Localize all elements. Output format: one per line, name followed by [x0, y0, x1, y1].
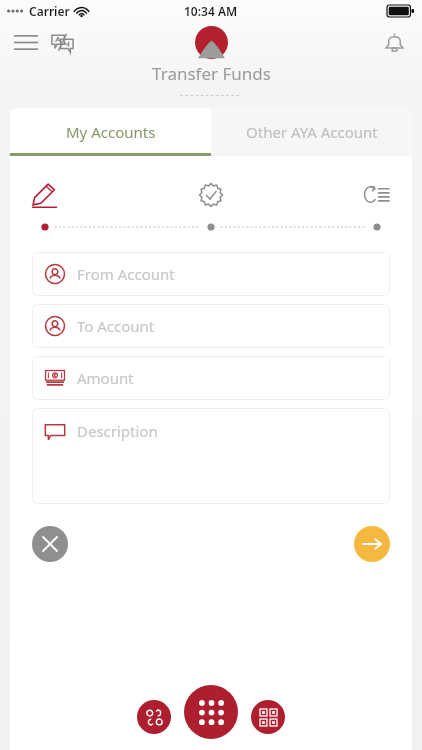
button[interactable]: To Account [32, 304, 390, 348]
staticText: My Accounts [66, 122, 156, 142]
button[interactable]: Amount [32, 356, 390, 400]
staticText: Other AYA Account [246, 122, 378, 142]
button[interactable]: Other AYA Account [211, 108, 412, 156]
button[interactable]: From Account [32, 252, 390, 296]
staticText: To Account [77, 316, 155, 336]
staticText: Carrier [29, 3, 70, 19]
staticText: Amount [77, 368, 134, 388]
button[interactable]: Change language [45, 25, 79, 59]
staticText: Transfer Funds [152, 62, 271, 85]
button[interactable]: Services [137, 700, 171, 734]
button[interactable]: Next [354, 526, 390, 562]
button[interactable]: Description [32, 408, 390, 504]
button[interactable]: Cancel [32, 526, 68, 562]
staticText: 10:34 AM [184, 3, 238, 19]
button[interactable]: Scan QR code [251, 700, 285, 734]
button[interactable]: My Accounts [10, 108, 211, 156]
staticText: Description [77, 421, 158, 441]
button[interactable]: All apps [184, 685, 238, 739]
button[interactable]: Notifications [377, 25, 411, 59]
staticText: From Account [77, 264, 175, 284]
button[interactable]: Menu [9, 25, 43, 59]
